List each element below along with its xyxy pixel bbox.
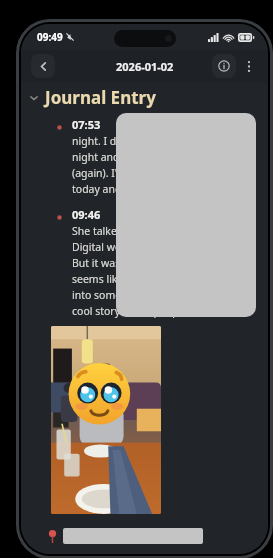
staticText: (again). I'm going to try to bbox=[72, 166, 200, 180]
staticText: Journal Entry bbox=[45, 86, 156, 109]
staticText: Digital world keeps changing. bbox=[72, 240, 219, 254]
button[interactable]: Journal photo bbox=[51, 326, 161, 514]
staticText: today and see how it goes. bbox=[72, 182, 204, 196]
staticText: She talked about how the bbox=[72, 224, 198, 238]
button[interactable]: Back bbox=[31, 54, 55, 78]
staticText: night. I didn't sleep well last bbox=[72, 134, 210, 148]
staticText: into something new and a bbox=[72, 288, 201, 302]
button[interactable]: Info bbox=[212, 54, 236, 78]
staticText: seems like a good way to get bbox=[72, 272, 215, 286]
button[interactable]: Journal Entry bbox=[29, 86, 268, 109]
staticText: 2026-01-02 bbox=[116, 59, 174, 74]
staticText: 07:53 bbox=[72, 117, 101, 132]
staticText: 09:49 bbox=[37, 30, 63, 44]
staticText: night and woke up early bbox=[72, 150, 191, 164]
button[interactable]: More options bbox=[238, 55, 260, 77]
staticText: cool story to tell people. bbox=[72, 304, 191, 318]
staticText: But it was interesting and it bbox=[72, 256, 208, 270]
staticText: 09:46 bbox=[72, 207, 101, 222]
